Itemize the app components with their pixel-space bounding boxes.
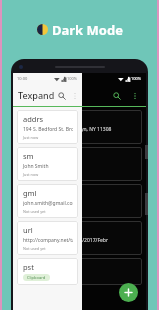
staticText: 100% bbox=[131, 76, 142, 81]
staticText: Texpand bbox=[18, 89, 55, 101]
staticText: Clipboard bbox=[27, 275, 46, 280]
staticText: Not used yet bbox=[23, 209, 46, 214]
staticText: pst bbox=[23, 262, 34, 272]
button[interactable]: gml bbox=[17, 184, 78, 218]
staticText: Just now bbox=[23, 135, 39, 140]
staticText: john.smith@gmail.com bbox=[23, 200, 73, 207]
staticText: http://company.net/tasks/2017/Febr bbox=[23, 237, 73, 244]
button[interactable]: sm bbox=[17, 147, 142, 181]
staticText: gml bbox=[23, 188, 37, 198]
staticText: sm bbox=[23, 151, 34, 161]
staticText: sm bbox=[23, 151, 34, 161]
staticText: John Smith bbox=[23, 163, 49, 170]
staticText: John Smith bbox=[23, 163, 49, 170]
staticText: 194 S. Bedford St. Brooklyn, NY 11308 bbox=[23, 126, 73, 133]
staticText: 10:00 bbox=[17, 76, 28, 81]
staticText: url bbox=[23, 225, 33, 235]
staticText: addrs bbox=[23, 114, 44, 124]
staticText: Not used yet bbox=[23, 209, 46, 214]
button[interactable]: pst bbox=[17, 258, 78, 285]
staticText: Texpand bbox=[18, 89, 55, 101]
staticText: john.smith@gmail.com bbox=[23, 200, 78, 207]
staticText: http://company.net/tasks/2017/Febr bbox=[23, 237, 108, 244]
staticText: Just now bbox=[23, 135, 39, 140]
staticText: pst bbox=[23, 262, 34, 272]
staticText: 10:00 bbox=[17, 76, 28, 81]
staticText: Dark Mode bbox=[52, 21, 123, 39]
button[interactable]: Add phrase bbox=[119, 283, 138, 302]
staticText: gml bbox=[23, 188, 37, 198]
staticText: 100% bbox=[67, 76, 78, 81]
button[interactable]: gml bbox=[17, 184, 142, 218]
staticText: Not used yet bbox=[23, 246, 46, 251]
staticText: Just now bbox=[23, 172, 39, 177]
button[interactable]: addrs bbox=[17, 110, 78, 144]
button[interactable]: More options bbox=[128, 89, 141, 102]
button[interactable]: Search bbox=[110, 89, 123, 102]
button[interactable]: url bbox=[17, 221, 78, 255]
button[interactable]: sm bbox=[17, 147, 78, 181]
staticText: Not used yet bbox=[23, 246, 46, 251]
staticText: 194 S. Bedford St. Brooklyn, NY 11308 bbox=[23, 126, 112, 133]
button[interactable]: pst bbox=[17, 258, 142, 285]
staticText: addrs bbox=[23, 114, 44, 124]
staticText: Just now bbox=[23, 172, 39, 177]
staticText: Clipboard bbox=[27, 275, 46, 280]
staticText: url bbox=[23, 225, 33, 235]
button[interactable]: url bbox=[17, 221, 142, 255]
button[interactable]: addrs bbox=[17, 110, 142, 144]
